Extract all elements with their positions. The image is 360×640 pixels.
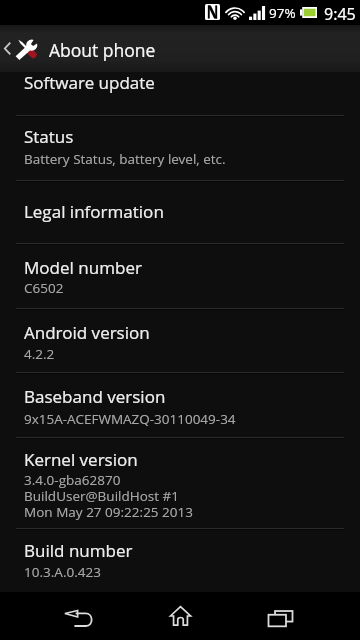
staticText: Android version xyxy=(24,321,150,344)
staticText: Baseband version xyxy=(24,385,166,408)
staticText: 10.3.A.0.423 xyxy=(24,563,101,581)
button[interactable]: Back xyxy=(18,592,138,640)
button[interactable]: Software update xyxy=(0,51,360,115)
staticText: Legal information xyxy=(24,200,164,223)
button[interactable]: Baseband version xyxy=(0,374,360,437)
button[interactable]: Model number xyxy=(0,245,360,308)
button[interactable]: Recent apps xyxy=(220,592,340,640)
staticText: Software update xyxy=(24,71,155,94)
button[interactable]: Build number xyxy=(0,530,360,571)
staticText: Kernel version xyxy=(24,448,138,471)
staticText: Status xyxy=(24,125,74,148)
button[interactable]: Kernel version xyxy=(0,439,360,528)
button[interactable]: Home xyxy=(120,592,240,640)
staticText: Model number xyxy=(24,256,142,279)
staticText: 9x15A-ACEFWMAZQ-30110049-34 xyxy=(24,410,236,428)
staticText: 9:45 xyxy=(324,3,356,25)
staticText: 97% xyxy=(269,4,296,22)
staticText: 3.4.0-gba62870 BuildUser@BuildHost #1 Mo… xyxy=(24,471,193,521)
button[interactable]: About phone xyxy=(0,25,360,72)
button[interactable]: Android version xyxy=(0,310,360,372)
button[interactable]: Status xyxy=(0,117,360,180)
button[interactable]: Legal information xyxy=(0,182,360,243)
staticText: About phone xyxy=(49,38,156,62)
staticText: 4.2.2 xyxy=(24,345,55,363)
staticText: Build number xyxy=(24,539,133,562)
staticText: Battery Status, battery level, etc. xyxy=(24,150,226,168)
staticText: C6502 xyxy=(24,279,64,297)
